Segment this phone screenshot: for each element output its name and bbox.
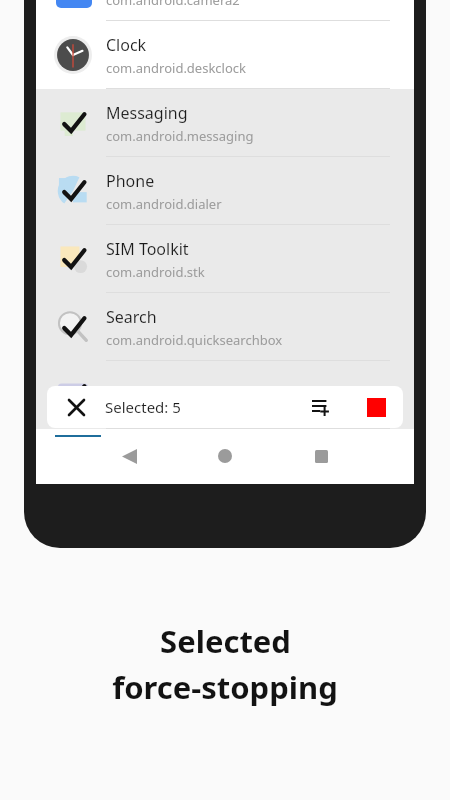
button[interactable]: Force stop	[358, 389, 394, 425]
staticText: Selected: 5	[105, 397, 181, 417]
staticText: force-stopping	[112, 666, 338, 708]
staticText: Clock	[106, 34, 147, 56]
staticText: SIM Toolkit	[106, 238, 189, 260]
staticText: com.android.messaging	[106, 127, 254, 145]
staticText: Selected	[160, 620, 291, 662]
button[interactable]: Search	[36, 293, 414, 361]
button[interactable]: Back	[111, 438, 147, 474]
staticText: com.android.stk	[106, 263, 205, 281]
staticText: com.android.camera2	[106, 0, 240, 9]
button[interactable]: Home	[207, 438, 243, 474]
button[interactable]: Add to list	[303, 389, 339, 425]
staticText: Search	[106, 306, 157, 328]
staticText: Phone	[106, 170, 155, 192]
button[interactable]: Clock	[36, 21, 414, 89]
button[interactable]: Shizuku	[36, 361, 414, 429]
button[interactable]: Recents	[303, 438, 339, 474]
staticText: com.android.quicksearchbox	[106, 331, 283, 349]
button[interactable]: Messaging	[36, 89, 414, 157]
staticText: com.android.dialer	[106, 195, 222, 213]
button[interactable]: SIM Toolkit	[36, 225, 414, 293]
staticText: Messaging	[106, 102, 188, 124]
button[interactable]: Phone	[36, 157, 414, 225]
button[interactable]: Close selection	[60, 391, 92, 423]
staticText: Shizuku	[106, 384, 165, 406]
staticText: com.android.deskclock	[106, 59, 247, 77]
